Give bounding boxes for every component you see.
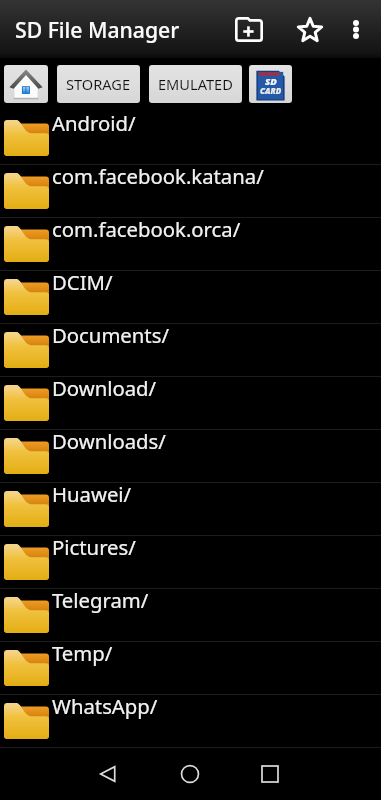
button[interactable]: STORAGE xyxy=(57,65,140,103)
staticText: SD xyxy=(265,75,277,88)
staticText: EMULATED xyxy=(158,74,233,94)
staticText: com.facebook.orca/ xyxy=(52,215,241,243)
staticText: com.facebook.katana/ xyxy=(52,162,264,190)
button[interactable]: Recents xyxy=(250,748,290,800)
staticText: Telegram/ xyxy=(52,586,149,614)
button[interactable]: Downloads/ xyxy=(0,430,381,483)
staticText: Pictures/ xyxy=(52,533,136,561)
button[interactable]: Android/ xyxy=(0,112,381,165)
button[interactable]: Pictures/ xyxy=(0,536,381,589)
staticText: Temp/ xyxy=(52,639,113,667)
button[interactable]: Home xyxy=(4,65,48,103)
staticText: SD File Manager xyxy=(15,15,180,44)
staticText: WhatsApp/ xyxy=(52,692,158,720)
button[interactable]: WhatsApp/ xyxy=(0,695,381,748)
staticText: CARD xyxy=(260,85,282,96)
button[interactable]: Documents/ xyxy=(0,324,381,377)
staticText: Download/ xyxy=(52,374,157,402)
staticText: Downloads/ xyxy=(52,427,166,455)
button[interactable]: Temp/ xyxy=(0,642,381,695)
button[interactable]: DCIM/ xyxy=(0,271,381,324)
staticText: Documents/ xyxy=(52,321,169,349)
button[interactable]: SD card xyxy=(249,65,292,103)
button[interactable]: More options xyxy=(334,0,378,58)
button[interactable]: Home xyxy=(170,748,210,800)
staticText: Android/ xyxy=(52,109,136,137)
button[interactable]: com.facebook.orca/ xyxy=(0,218,381,271)
button[interactable]: Back xyxy=(88,748,128,800)
button[interactable]: com.facebook.katana/ xyxy=(0,165,381,218)
staticText: Huawei/ xyxy=(52,480,132,508)
button[interactable]: EMULATED xyxy=(149,65,242,103)
button[interactable]: Download/ xyxy=(0,377,381,430)
staticText: DCIM/ xyxy=(52,268,113,296)
button[interactable]: Huawei/ xyxy=(0,483,381,536)
button[interactable]: Telegram/ xyxy=(0,589,381,642)
staticText: STORAGE xyxy=(66,74,131,94)
button[interactable]: Bookmarks xyxy=(285,0,334,58)
button[interactable]: New folder xyxy=(224,0,273,58)
